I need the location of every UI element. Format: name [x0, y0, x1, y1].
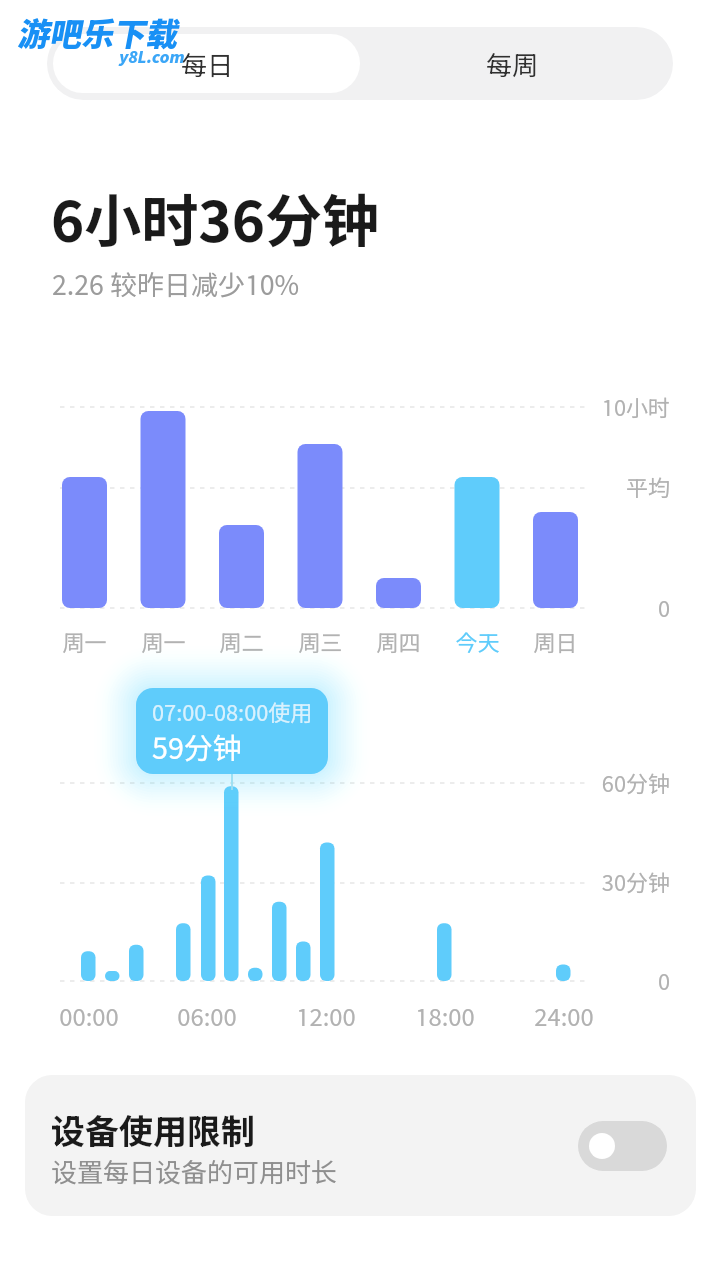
staticText: 18:00 — [415, 1003, 475, 1031]
staticText: 设备使用限制 — [51, 1111, 255, 1151]
staticText: y8L.com — [119, 47, 185, 66]
staticText: 07:00-08:00使用 — [152, 700, 313, 726]
staticText: 周三 — [298, 630, 343, 656]
staticText: 周日 — [533, 630, 578, 656]
staticText: 59分钟 — [152, 731, 242, 765]
staticText: 0 — [657, 596, 670, 622]
staticText: 10小时 — [601, 395, 670, 421]
button[interactable]: 每周 — [360, 27, 673, 100]
staticText: 0 — [657, 969, 670, 995]
staticText: 周一 — [62, 630, 107, 656]
staticText: 06:00 — [177, 1003, 237, 1031]
staticText: 周四 — [376, 630, 421, 656]
button[interactable]: 07:00-08:00使用 — [136, 688, 328, 774]
staticText: 周二 — [219, 630, 264, 656]
staticText: 每周 — [486, 50, 539, 81]
staticText: 每日 — [181, 50, 234, 81]
button[interactable]: 设备使用限制 — [25, 1075, 696, 1216]
button[interactable]: 每日 — [47, 27, 360, 100]
staticText: 00:00 — [59, 1003, 119, 1031]
staticText: 2.26 较昨日减少10% — [52, 269, 300, 301]
staticText: 24:00 — [534, 1003, 594, 1031]
staticText: 6小时36分钟 — [51, 187, 380, 254]
staticText: 60分钟 — [601, 771, 670, 797]
staticText: 设置每日设备的可用时长 — [51, 1157, 338, 1188]
staticText: 今天 — [455, 630, 500, 656]
staticText: 平均 — [625, 475, 670, 501]
staticText: 游吧乐下载 — [19, 15, 180, 53]
staticText: 周一 — [141, 630, 186, 656]
staticText: 12:00 — [296, 1003, 356, 1031]
button[interactable]: Toggle device usage limit — [578, 1121, 667, 1171]
staticText: 30分钟 — [601, 870, 670, 896]
